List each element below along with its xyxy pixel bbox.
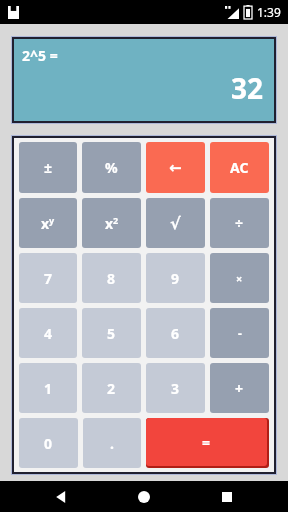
staticText: ± [44, 158, 53, 177]
staticText: ÷ [235, 214, 244, 233]
button[interactable]: - [210, 308, 269, 358]
staticText: 7 [44, 269, 53, 288]
button[interactable]: xy [19, 198, 77, 248]
staticText: % [105, 158, 118, 177]
button[interactable]: 9 [146, 253, 205, 303]
button[interactable]: 5 [82, 308, 141, 358]
button[interactable]: 1 [19, 363, 77, 413]
button[interactable]: AC [210, 142, 269, 193]
button[interactable]: = [146, 418, 267, 466]
button[interactable]: 6 [146, 308, 205, 358]
staticText: x2 [105, 214, 119, 233]
button[interactable]: 3 [146, 363, 205, 413]
staticText: 1 [44, 379, 53, 398]
button[interactable]: Home [122, 481, 166, 512]
staticText: 1:39 [257, 4, 281, 20]
button[interactable]: × [210, 253, 269, 303]
staticText: + [235, 379, 244, 398]
button[interactable]: ← [146, 142, 205, 193]
button[interactable]: + [210, 363, 269, 413]
staticText: = [202, 433, 211, 452]
staticText: 2^5 = [22, 46, 58, 65]
staticText: AC [230, 158, 249, 177]
button[interactable]: 2 [82, 363, 141, 413]
button[interactable]: 4 [19, 308, 77, 358]
button[interactable]: √ [146, 198, 205, 248]
button[interactable]: ÷ [210, 198, 269, 248]
button[interactable]: x2 [82, 198, 141, 248]
button[interactable]: Back [39, 481, 83, 512]
staticText: 3 [171, 379, 180, 398]
staticText: . [110, 434, 114, 453]
staticText: xy [41, 214, 55, 233]
staticText: 2 [107, 379, 116, 398]
button[interactable]: 7 [19, 253, 77, 303]
button[interactable]: Recent apps [205, 481, 249, 512]
staticText: ← [169, 159, 182, 176]
staticText: 5 [107, 324, 116, 343]
button[interactable]: % [82, 142, 141, 193]
staticText: 4 [44, 324, 53, 343]
staticText: 0 [44, 434, 53, 453]
staticText: 9 [171, 269, 180, 288]
staticText: × [236, 271, 243, 286]
button[interactable]: ± [19, 142, 77, 193]
button[interactable]: 0 [19, 418, 78, 468]
staticText: - [238, 325, 242, 341]
staticText: 8 [107, 269, 116, 288]
staticText: 6 [171, 324, 180, 343]
staticText: 32 [231, 69, 264, 107]
button[interactable]: 8 [82, 253, 141, 303]
staticText: √ [170, 214, 181, 233]
